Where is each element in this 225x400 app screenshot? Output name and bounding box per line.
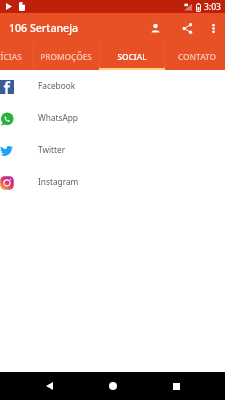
- staticText: Twitter: [38, 144, 66, 155]
- button[interactable]: Facebook: [0, 71, 225, 103]
- button[interactable]: PROMOÇÕES: [33, 43, 99, 70]
- staticText: Instagram: [38, 176, 79, 187]
- staticText: WhatsApp: [38, 112, 78, 123]
- button[interactable]: Share: [174, 15, 200, 41]
- button[interactable]: Twitter: [0, 135, 225, 167]
- staticText: Facebook: [38, 80, 76, 91]
- button[interactable]: Account: [142, 15, 168, 41]
- button[interactable]: More options: [201, 16, 225, 40]
- button[interactable]: WhatsApp: [0, 103, 225, 135]
- staticText: NOTÍCIAS: [0, 51, 22, 62]
- staticText: 106 Sertaneja: [9, 21, 79, 35]
- staticText: PROMOÇÕES: [40, 51, 92, 62]
- staticText: SOCIAL: [117, 51, 147, 62]
- button[interactable]: Back: [35, 372, 63, 400]
- button[interactable]: NOTÍCIAS: [0, 43, 35, 70]
- button[interactable]: CONTATO: [164, 43, 225, 70]
- button[interactable]: Recents: [162, 372, 190, 400]
- staticText: CONTATO: [178, 51, 216, 62]
- staticText: 3:03: [204, 1, 221, 13]
- button[interactable]: SOCIAL: [99, 43, 165, 70]
- button[interactable]: Instagram: [0, 167, 225, 199]
- button[interactable]: Home: [99, 372, 127, 400]
